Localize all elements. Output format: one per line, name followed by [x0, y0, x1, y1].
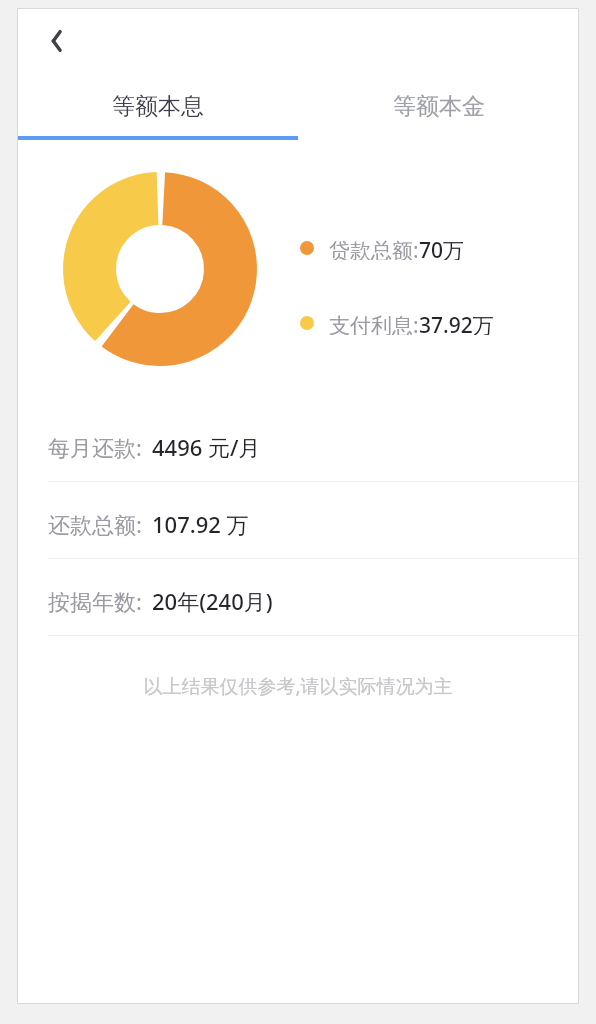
- staticText: 每月还款:: [48, 432, 142, 462]
- staticText: 等额本金: [393, 92, 485, 121]
- staticText: 107.92 万: [152, 509, 249, 539]
- staticText: 等额本息: [112, 92, 204, 121]
- staticText: 贷款总额:: [329, 236, 419, 260]
- button[interactable]: 支付利息:: [300, 311, 494, 335]
- staticText: 37.92万: [419, 311, 494, 335]
- button[interactable]: 还款总额:: [17, 489, 579, 558]
- staticText: 70万: [419, 236, 465, 260]
- button[interactable]: 每月还款:: [17, 412, 579, 481]
- button[interactable]: 等额本金: [298, 72, 579, 140]
- button[interactable]: 按揭年数:: [17, 566, 579, 635]
- button[interactable]: 等额本息: [17, 72, 298, 140]
- staticText: 支付利息:: [329, 311, 419, 335]
- staticText: 以上结果仅供参考,请以实际情况为主: [143, 673, 453, 699]
- staticText: 20年(240月): [152, 586, 273, 616]
- staticText: 按揭年数:: [48, 586, 142, 616]
- button[interactable]: 贷款总额:: [300, 236, 465, 260]
- button[interactable]: Back: [34, 17, 82, 65]
- staticText: 4496 元/月: [152, 432, 261, 462]
- staticText: 还款总额:: [48, 509, 142, 539]
